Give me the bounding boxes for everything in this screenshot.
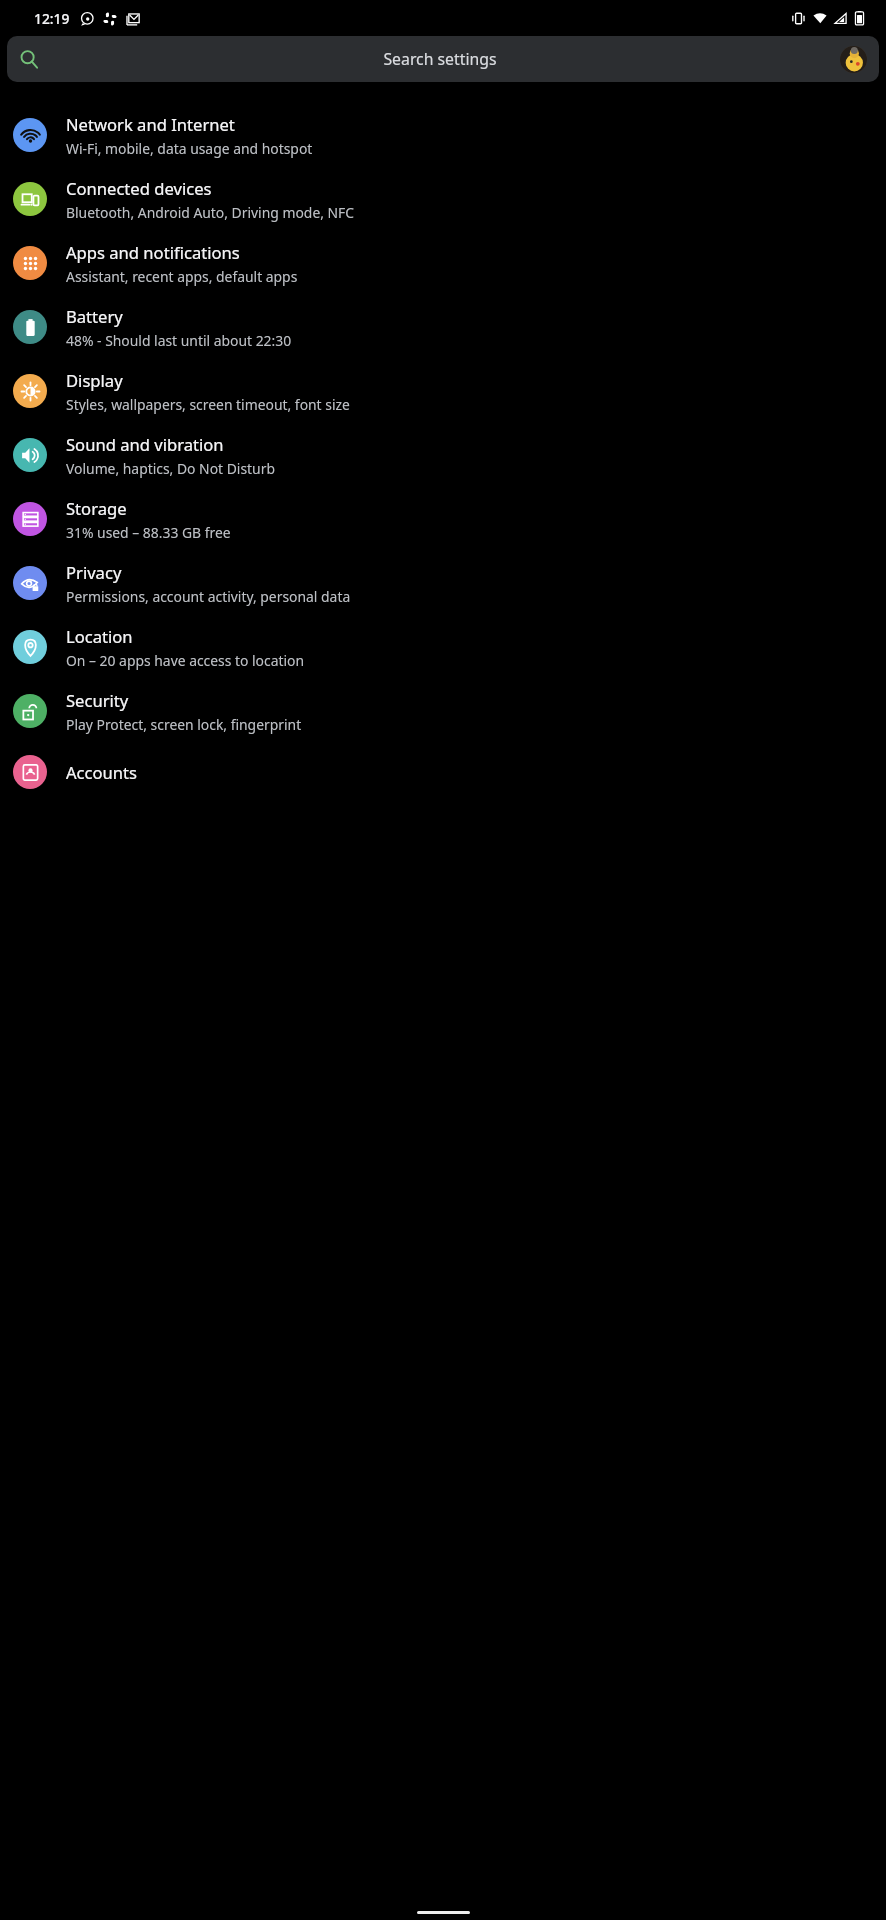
button[interactable]: Security: [0, 679, 886, 743]
staticText: Play Protect, screen lock, fingerprint: [66, 715, 302, 734]
button[interactable]: Search: [7, 36, 879, 82]
staticText: Storage: [66, 497, 127, 520]
staticText: Wi-Fi, mobile, data usage and hotspot: [66, 139, 313, 158]
staticText: Assistant, recent apps, default apps: [66, 267, 298, 286]
button[interactable]: Accounts: [0, 743, 886, 801]
button[interactable]: Storage: [0, 487, 886, 551]
staticText: Apps and notifications: [66, 241, 240, 264]
staticText: 12:19: [34, 9, 70, 28]
button[interactable]: Account: [840, 46, 867, 73]
staticText: Battery: [66, 305, 123, 328]
button[interactable]: Connected devices: [0, 167, 886, 231]
staticText: Security: [66, 689, 129, 712]
button[interactable]: Battery: [0, 295, 886, 359]
staticText: 31% used – 88.33 GB free: [66, 523, 231, 542]
button[interactable]: Display: [0, 359, 886, 423]
staticText: Permissions, account activity, personal …: [66, 587, 351, 606]
button[interactable]: Apps and notifications: [0, 231, 886, 295]
staticText: Sound and vibration: [66, 433, 224, 456]
staticText: Bluetooth, Android Auto, Driving mode, N…: [66, 203, 355, 222]
staticText: Display: [66, 369, 123, 392]
staticText: Volume, haptics, Do Not Disturb: [66, 459, 275, 478]
staticText: Location: [66, 625, 133, 648]
staticText: Network and Internet: [66, 113, 235, 136]
staticText: Privacy: [66, 561, 122, 584]
button[interactable]: Sound and vibration: [0, 423, 886, 487]
staticText: Connected devices: [66, 177, 212, 200]
button[interactable]: Privacy: [0, 551, 886, 615]
staticText: On – 20 apps have access to location: [66, 651, 305, 670]
staticText: Search settings: [383, 48, 497, 70]
other: Search: [20, 50, 39, 69]
button[interactable]: Location: [0, 615, 886, 679]
staticText: Styles, wallpapers, screen timeout, font…: [66, 395, 350, 414]
staticText: 48% - Should last until about 22:30: [66, 331, 292, 350]
staticText: Accounts: [66, 761, 138, 784]
button[interactable]: Network and Internet: [0, 103, 886, 167]
